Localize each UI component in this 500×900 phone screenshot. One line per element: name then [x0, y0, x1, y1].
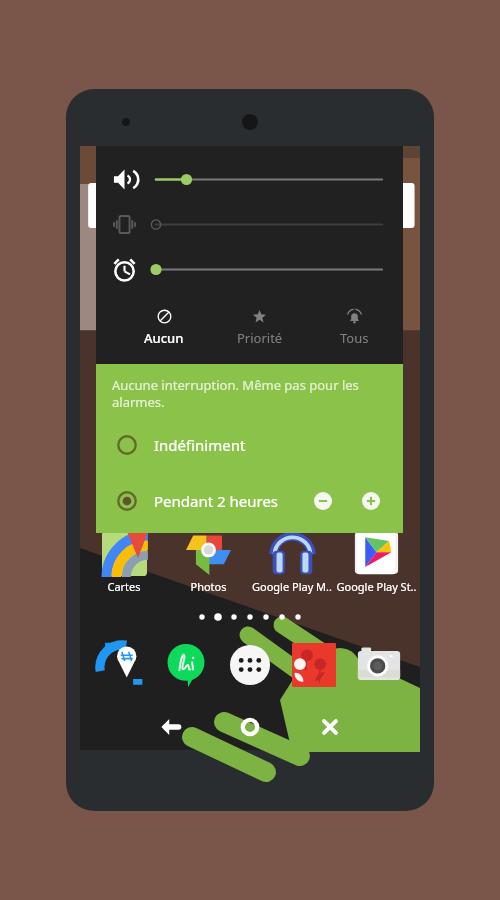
staticText: Google Play St.. — [336, 579, 416, 594]
button[interactable]: Priorité — [212, 309, 307, 347]
button[interactable]: Plus — [360, 490, 382, 512]
staticText: Aucune interruption. Même pas pour les a… — [112, 376, 361, 411]
button[interactable]: Close — [310, 707, 350, 747]
staticText: Indéfiniment — [154, 435, 246, 455]
button[interactable]: Photos — [168, 531, 248, 594]
button[interactable] — [96, 247, 403, 292]
button[interactable]: Home — [230, 707, 270, 747]
button[interactable]: Photos app — [291, 642, 337, 688]
button[interactable]: Indéfiniment — [96, 417, 403, 473]
button[interactable]: Google Play M.. — [252, 531, 332, 594]
button[interactable]: Aucun — [116, 309, 212, 347]
staticText: Priorité — [237, 329, 283, 347]
button[interactable]: Phone — [98, 642, 144, 688]
button[interactable]: Tous — [307, 309, 402, 347]
button[interactable] — [96, 202, 403, 247]
button[interactable]: Back — [150, 707, 190, 747]
button[interactable]: All apps — [227, 642, 273, 688]
staticText: Google Play M.. — [252, 579, 332, 594]
staticText: Tous — [340, 329, 369, 347]
button[interactable]: Pendant 2 heures — [96, 473, 403, 529]
button[interactable]: Camera — [356, 642, 402, 688]
button[interactable]: Messages — [163, 642, 209, 688]
button[interactable]: Cartes — [84, 531, 164, 594]
staticText: Aucun — [144, 329, 184, 347]
staticText: Cartes — [107, 579, 141, 594]
button[interactable]: Google Play St.. — [336, 531, 416, 594]
staticText: Pendant 2 heures — [154, 491, 279, 511]
staticText: Photos — [190, 579, 227, 594]
button[interactable]: Minus — [312, 490, 334, 512]
button[interactable] — [96, 157, 403, 202]
